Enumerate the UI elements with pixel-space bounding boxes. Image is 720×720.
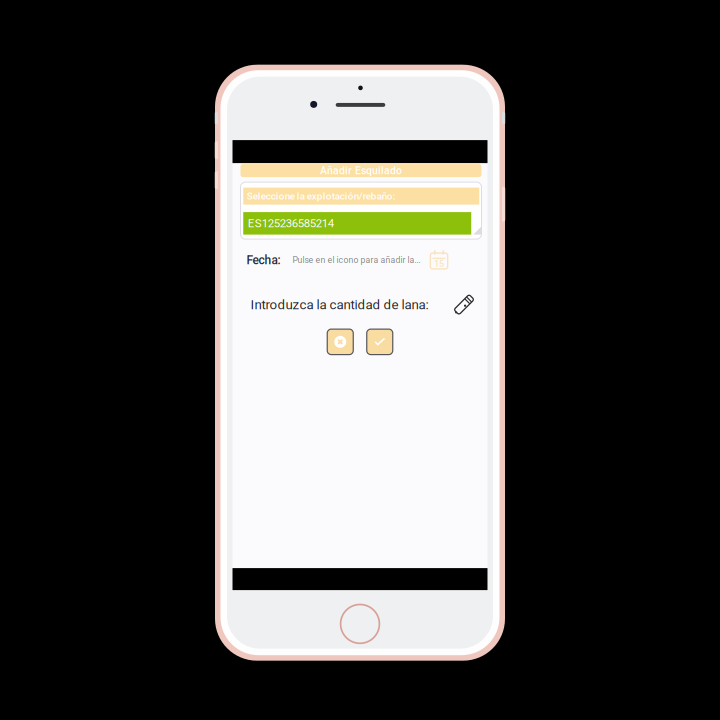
button[interactable]: Seleccione la explotación/rebaño: — [243, 188, 479, 205]
staticText: 15 — [434, 258, 444, 269]
staticText: Pulse en el icono para añadir la... — [292, 255, 420, 265]
button[interactable]: Elegir fecha — [429, 250, 448, 270]
staticText: Fecha: — [246, 253, 280, 267]
button[interactable]: ES125236585214 — [243, 212, 471, 235]
staticText: Introduzca la cantidad de lana: — [250, 297, 428, 312]
staticText: Seleccione la explotación/rebaño: — [247, 190, 396, 202]
staticText: Añadir Esquilado — [320, 164, 402, 177]
button[interactable]: Aceptar — [367, 329, 393, 355]
button[interactable]: Editar cantidad — [453, 294, 474, 315]
staticText: ES125236585214 — [248, 217, 334, 230]
button[interactable]: Cancelar — [327, 329, 353, 355]
